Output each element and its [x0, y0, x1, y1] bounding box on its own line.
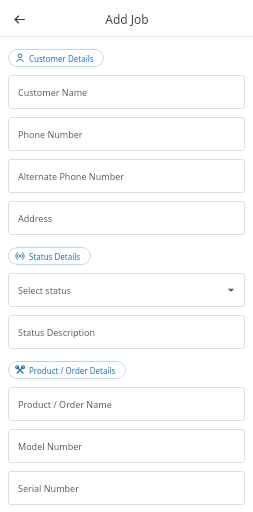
button[interactable]: Customer Details [8, 49, 104, 67]
staticText: Customer Details [29, 53, 94, 64]
staticText: Product / Order Details [29, 365, 116, 376]
staticText: Product / Order Name [18, 398, 112, 410]
staticText: Address [18, 212, 53, 224]
button[interactable]: Address [8, 201, 245, 235]
staticText: Serial Number [18, 482, 79, 494]
staticText: Model Number [18, 440, 83, 452]
button[interactable]: Alternate Phone Number [8, 159, 245, 193]
button[interactable]: Serial Number [8, 471, 245, 505]
button[interactable]: Phone Number [8, 117, 245, 151]
button[interactable]: Customer Name [8, 75, 245, 109]
button[interactable]: Back [6, 6, 32, 32]
staticText: Add Job [105, 11, 149, 27]
staticText: Select status [18, 284, 72, 296]
button[interactable]: Status Details [8, 247, 91, 265]
staticText: Status Description [18, 326, 96, 338]
staticText: Customer Name [18, 86, 88, 98]
button[interactable]: Status Description [8, 315, 245, 349]
button[interactable]: Model Number [8, 429, 245, 463]
staticText: Phone Number [18, 128, 83, 140]
button[interactable]: Product / Order Name [8, 387, 245, 421]
staticText: Status Details [29, 251, 81, 262]
button[interactable]: Product / Order Details [8, 361, 126, 379]
staticText: Alternate Phone Number [18, 170, 124, 182]
button[interactable]: Select status [8, 273, 245, 307]
